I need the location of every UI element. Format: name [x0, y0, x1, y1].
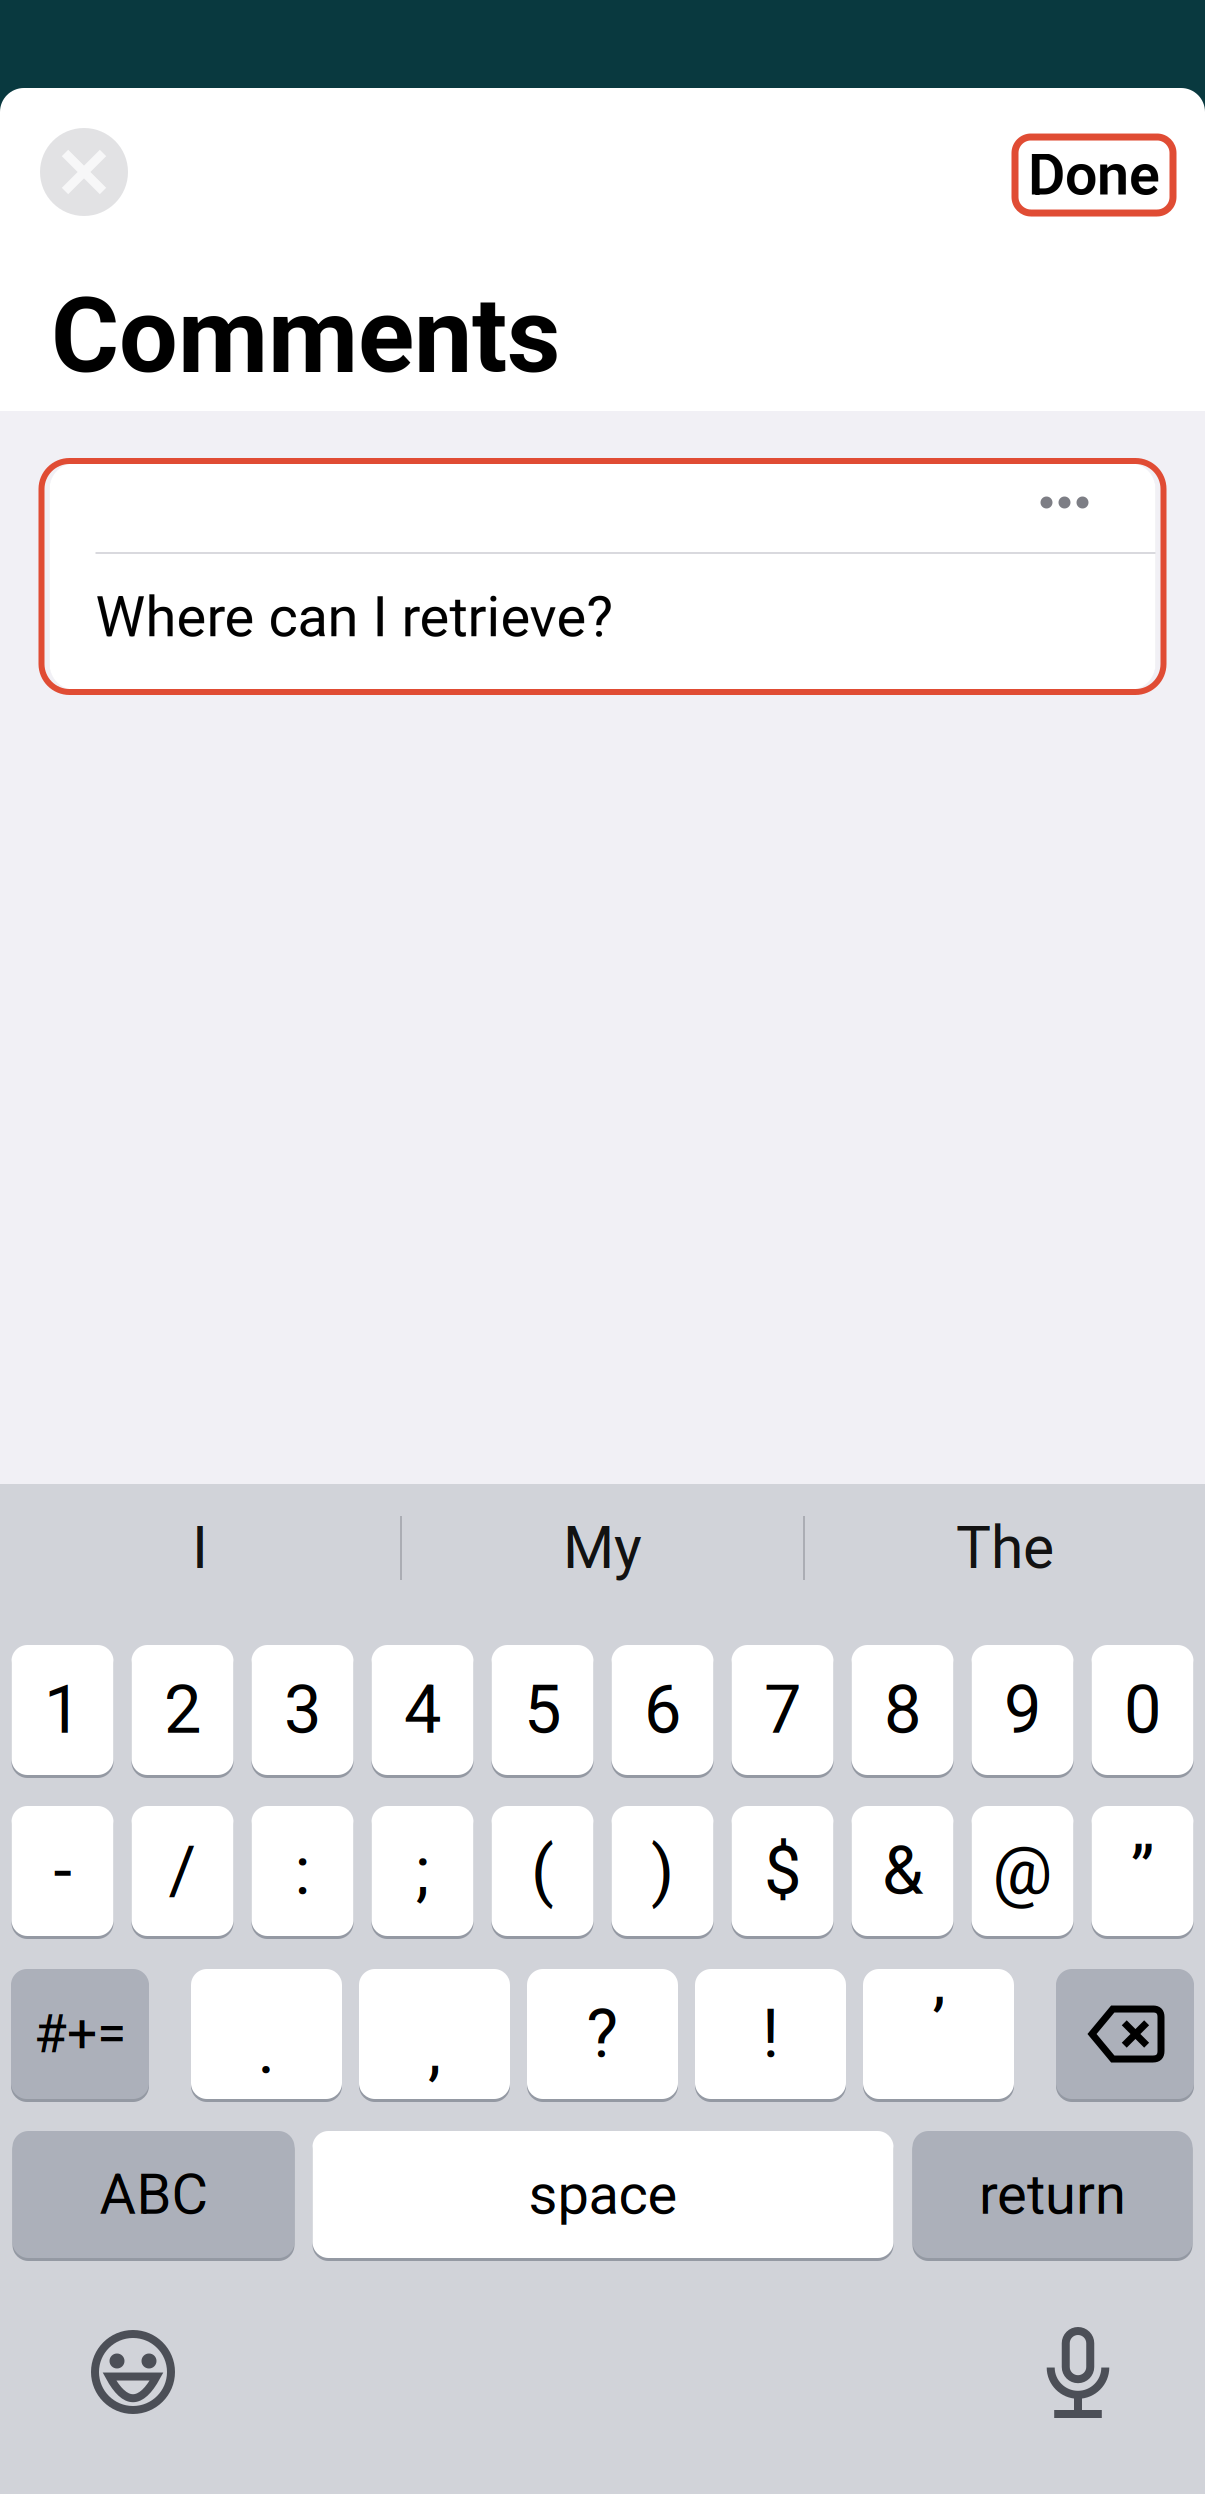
button[interactable]: 0	[1091, 1645, 1193, 1775]
staticText: !	[762, 1995, 779, 2073]
staticText: 6	[644, 1671, 681, 1749]
staticText: 8	[884, 1671, 921, 1749]
staticText: /	[168, 1832, 196, 1910]
staticText: 2	[164, 1671, 201, 1749]
button[interactable]: #+=	[11, 1969, 149, 2099]
staticText: )	[651, 1832, 674, 1910]
staticText: ’	[932, 1985, 945, 2063]
staticText: Where can I retrieve?	[95, 584, 612, 650]
staticText: :	[294, 1832, 310, 1910]
button[interactable]: 9	[971, 1645, 1073, 1775]
button[interactable]: 8	[851, 1645, 953, 1775]
button[interactable]: :	[251, 1806, 353, 1936]
button[interactable]: (	[491, 1806, 593, 1936]
button[interactable]: Dictate	[1022, 2316, 1134, 2428]
staticText: (	[531, 1832, 554, 1910]
staticText: $	[764, 1832, 801, 1910]
staticText: ,	[428, 2011, 441, 2089]
button[interactable]: ’	[863, 1969, 1014, 2099]
button[interactable]: )	[611, 1806, 713, 1936]
button[interactable]: ,	[359, 1969, 510, 2099]
staticText: Comments	[51, 275, 560, 397]
staticText: &	[882, 1832, 923, 1910]
button[interactable]: .	[191, 1969, 342, 2099]
staticText: 1	[44, 1671, 81, 1749]
button[interactable]: 3	[251, 1645, 353, 1775]
button[interactable]: !	[695, 1969, 846, 2099]
staticText: space	[528, 2162, 677, 2227]
staticText: ”	[1130, 1832, 1154, 1910]
button[interactable]: ABC	[12, 2131, 294, 2258]
button[interactable]: ;	[371, 1806, 473, 1936]
button[interactable]: Emoji keyboard	[77, 2316, 189, 2428]
staticText: ?	[586, 1995, 618, 2073]
button[interactable]: Delete	[1056, 1969, 1194, 2099]
button[interactable]: 1	[11, 1645, 113, 1775]
button[interactable]: My	[402, 1484, 803, 1612]
staticText: The	[956, 1514, 1054, 1582]
button[interactable]: 4	[371, 1645, 473, 1775]
button[interactable]: ”	[1091, 1806, 1193, 1936]
button[interactable]: Close	[40, 131, 128, 219]
button[interactable]: 7	[731, 1645, 833, 1775]
staticText: 9	[1004, 1671, 1041, 1749]
staticText: -	[53, 1832, 71, 1910]
button[interactable]: -	[11, 1806, 113, 1936]
staticText: 7	[764, 1671, 801, 1749]
button[interactable]: 2	[131, 1645, 233, 1775]
staticText: 5	[524, 1671, 561, 1749]
button[interactable]: @	[971, 1806, 1073, 1936]
button[interactable]: I	[0, 1484, 400, 1612]
staticText: Done	[1028, 141, 1160, 209]
staticText: .	[257, 2011, 275, 2089]
button[interactable]: Done	[1015, 137, 1173, 213]
staticText: @	[992, 1832, 1052, 1910]
staticText: ABC	[99, 2162, 207, 2227]
staticText: 3	[284, 1671, 321, 1749]
button[interactable]: ?	[527, 1969, 678, 2099]
button[interactable]: return	[912, 2131, 1192, 2258]
staticText: 4	[404, 1671, 441, 1749]
button[interactable]: $	[731, 1806, 833, 1936]
staticText: My	[563, 1514, 642, 1582]
button[interactable]: /	[131, 1806, 233, 1936]
staticText: return	[979, 2162, 1126, 2227]
button[interactable]: &	[851, 1806, 953, 1936]
staticText: ;	[415, 1832, 429, 1910]
button[interactable]: 5	[491, 1645, 593, 1775]
staticText: #+=	[34, 2003, 126, 2065]
button[interactable]: The	[805, 1484, 1205, 1612]
button[interactable]: space	[312, 2131, 893, 2258]
button[interactable]: 6	[611, 1645, 713, 1775]
staticText: I	[192, 1514, 208, 1582]
staticText: 0	[1124, 1671, 1161, 1749]
